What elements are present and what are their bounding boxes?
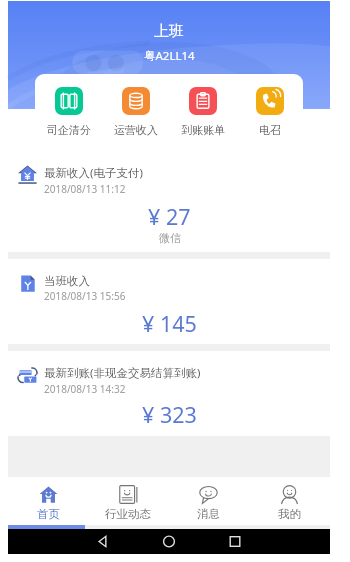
staticText: 最新收入(电子支付) (44, 165, 143, 181)
staticText: ¥ 323 (142, 400, 197, 429)
button[interactable]: 行业动态 (88, 477, 168, 525)
staticText: 当班收入 (44, 274, 90, 288)
staticText: ¥ 145 (142, 309, 197, 338)
button[interactable]: 我的 (249, 477, 330, 525)
staticText: 运营收入 (114, 123, 158, 137)
staticText: 2018/08/13 11:12 (44, 182, 126, 196)
staticText: 最新到账(非现金交易结算到账) (44, 365, 201, 381)
staticText: 2018/08/13 15:56 (44, 289, 126, 303)
staticText: 我的 (278, 507, 301, 521)
staticText: 司企清分 (47, 123, 91, 137)
button[interactable]: 到账账单 (169, 74, 236, 145)
button[interactable]: 电召 (236, 74, 303, 145)
staticText: 粤A2LL14 (144, 48, 195, 64)
other: System navigation (8, 529, 330, 554)
staticText: 到账账单 (181, 123, 225, 137)
staticText: 2018/08/13 14:32 (44, 382, 126, 396)
staticText: 上班 (154, 22, 184, 41)
staticText: 消息 (197, 507, 220, 521)
staticText: 行业动态 (105, 507, 151, 521)
staticText: ¥ 27 (148, 202, 191, 231)
button[interactable]: 消息 (168, 477, 249, 525)
staticText: 首页 (37, 507, 60, 521)
button[interactable]: 运营收入 (102, 74, 169, 145)
staticText: 电召 (259, 123, 281, 137)
button[interactable]: 首页 (8, 477, 88, 525)
button[interactable]: 司企清分 (35, 74, 102, 145)
staticText: 微信 (159, 231, 181, 245)
